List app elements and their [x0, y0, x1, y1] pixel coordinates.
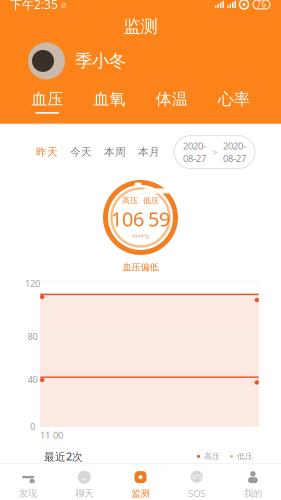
- staticText: 高压: [122, 196, 138, 205]
- staticText: 00: [53, 429, 63, 441]
- button[interactable]: 体温: [140, 89, 203, 114]
- button[interactable]: 昨天: [30, 142, 64, 162]
- staticText: 血氧: [93, 89, 125, 109]
- staticText: 40: [27, 373, 37, 386]
- staticText: 高压: [204, 451, 220, 461]
- staticText: mmHg: [132, 232, 149, 239]
- staticText: 低压: [143, 196, 159, 205]
- button[interactable]: ⌄: [56, 470, 112, 499]
- staticText: >: [212, 146, 217, 158]
- button[interactable]: 心率: [203, 89, 265, 114]
- staticText: 监测: [131, 488, 149, 499]
- button[interactable]: 发现: [0, 470, 56, 499]
- staticText: 下午2:35: [10, 0, 58, 12]
- staticText: 2020-08-27: [223, 140, 246, 164]
- staticText: 低压: [237, 451, 253, 461]
- button[interactable]: 本月: [132, 142, 166, 162]
- staticText: 心率: [218, 89, 250, 109]
- staticText: 今天: [70, 145, 92, 159]
- staticText: 血压: [31, 89, 63, 109]
- staticText: 59: [148, 206, 170, 232]
- staticText: SOS: [192, 473, 202, 480]
- staticText: 2020-08-27: [183, 140, 206, 164]
- staticText: 本月: [138, 145, 160, 159]
- staticText: 聊天: [75, 488, 93, 499]
- staticText: 体温: [156, 89, 188, 109]
- button[interactable]: 我的: [225, 470, 281, 499]
- staticText: 0: [30, 420, 35, 433]
- button[interactable]: 血压: [16, 89, 78, 114]
- staticText: 106: [111, 206, 144, 232]
- staticText: 本周: [104, 145, 126, 159]
- staticText: 76: [256, 0, 266, 10]
- staticText: ⌀: [58, 0, 67, 10]
- staticText: 血压偏低: [122, 261, 158, 273]
- staticText: ⌄: [80, 471, 89, 483]
- staticText: 11: [40, 429, 50, 441]
- staticText: 80: [27, 330, 37, 343]
- button[interactable]: SOS: [169, 469, 225, 500]
- button[interactable]: 血氧: [78, 89, 140, 114]
- staticText: 120: [25, 277, 40, 290]
- button[interactable]: 今天: [64, 142, 98, 162]
- staticText: 发现: [19, 488, 37, 499]
- button[interactable]: 2020-08-27: [174, 136, 255, 168]
- staticText: 季小冬: [75, 50, 126, 72]
- staticText: 最近2次: [44, 449, 83, 463]
- staticText: 昨天: [36, 145, 58, 159]
- staticText: 监测: [123, 16, 157, 37]
- staticText: SOS: [188, 487, 205, 500]
- button[interactable]: 本周: [98, 142, 132, 162]
- staticText: 我的: [244, 488, 262, 499]
- button[interactable]: 监测: [112, 470, 169, 499]
